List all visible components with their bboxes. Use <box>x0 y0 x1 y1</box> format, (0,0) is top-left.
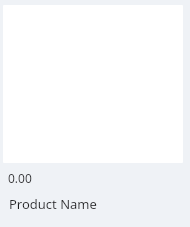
staticText: Product Name <box>9 195 97 213</box>
staticText: 0.00 <box>8 170 32 186</box>
button[interactable]: 0.00 <box>0 0 190 227</box>
